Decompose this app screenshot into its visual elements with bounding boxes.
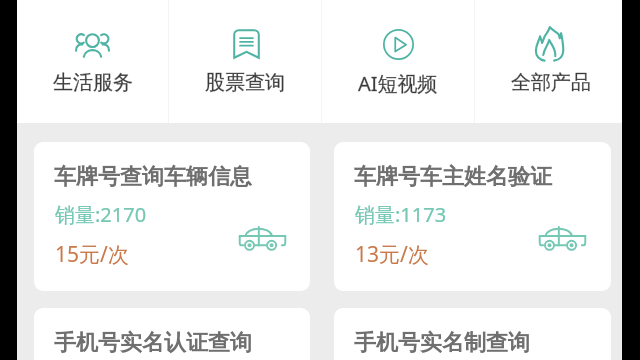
button[interactable]: 车牌号车主姓名验证 bbox=[334, 142, 611, 291]
other: Life services bbox=[74, 31, 111, 57]
other: All products bbox=[535, 27, 564, 61]
staticText: 车牌号车主姓名验证 bbox=[354, 163, 552, 191]
staticText: 13元/次 bbox=[355, 240, 429, 269]
button[interactable]: 手机号实名认证查询 bbox=[34, 308, 310, 360]
button[interactable]: 手机号实名制查询 bbox=[334, 308, 611, 360]
staticText: 手机号实名认证查询 bbox=[54, 329, 252, 357]
button[interactable]: AI short video bbox=[322, 0, 474, 123]
staticText: 销量:2170 bbox=[55, 201, 147, 228]
other: AI short video bbox=[383, 29, 414, 60]
staticText: 销量:1173 bbox=[355, 201, 447, 228]
staticText: 全部产品 bbox=[511, 70, 591, 95]
staticText: 生活服务 bbox=[53, 70, 133, 95]
staticText: 全部产品 bbox=[511, 70, 591, 95]
button[interactable]: Life services bbox=[17, 0, 168, 123]
staticText: AI短视频 bbox=[358, 70, 438, 97]
staticText: 15元/次 bbox=[55, 240, 129, 269]
staticText: 手机号实名制查询 bbox=[354, 329, 530, 357]
staticText: 生活服务 bbox=[53, 70, 133, 95]
button[interactable]: All products bbox=[475, 0, 622, 123]
button[interactable]: Stock query bbox=[169, 0, 321, 123]
other: Stock query bbox=[233, 29, 260, 59]
button[interactable]: 车牌号查询车辆信息 bbox=[34, 142, 310, 291]
staticText: 股票查询 bbox=[205, 70, 285, 95]
staticText: AI短视频 bbox=[358, 70, 438, 97]
staticText: 车牌号查询车辆信息 bbox=[54, 163, 252, 191]
staticText: 股票查询 bbox=[205, 70, 285, 95]
